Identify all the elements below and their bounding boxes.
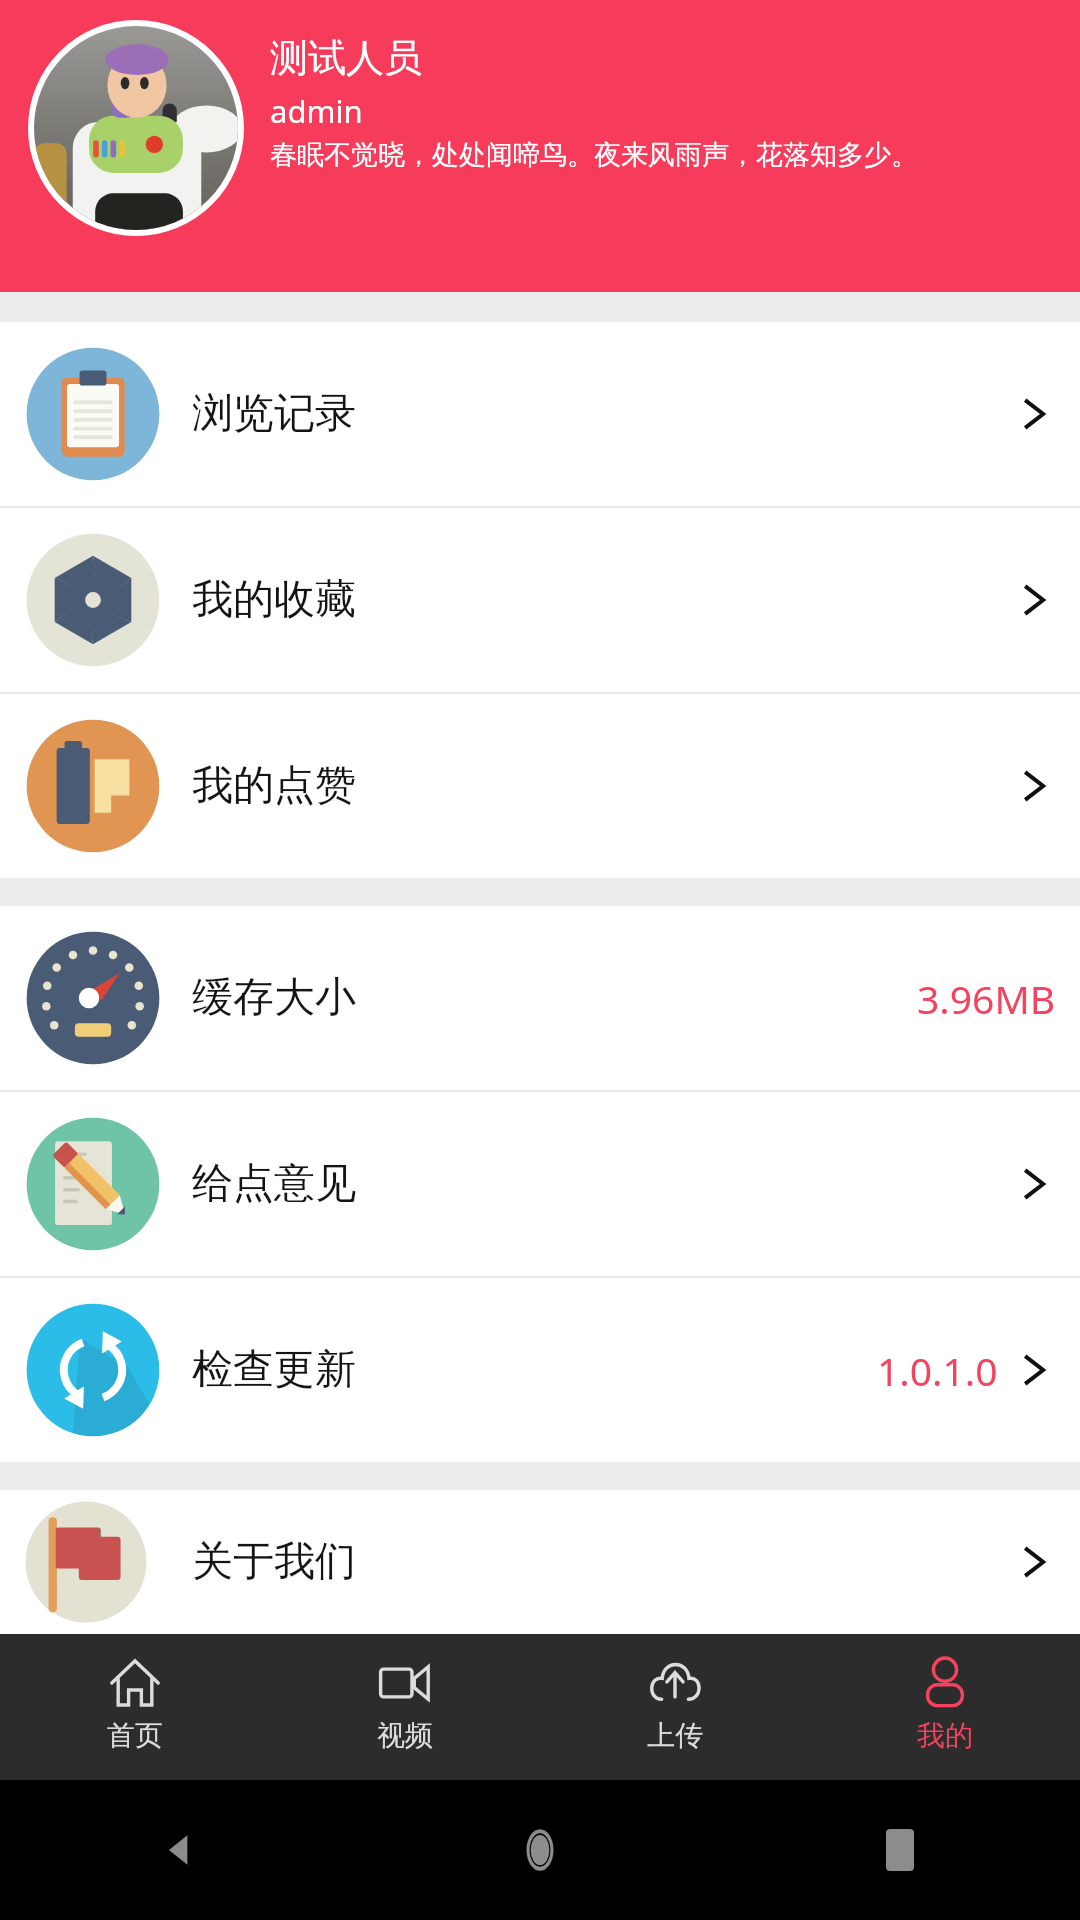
button[interactable]: 上传 [540, 1634, 810, 1780]
other: Home [514, 1824, 566, 1876]
button[interactable]: 检查更新 [0, 1278, 1080, 1462]
staticText: 浏览记录 [192, 388, 356, 440]
button[interactable]: 我的 [810, 1634, 1080, 1780]
staticText: 我的点赞 [192, 760, 356, 812]
staticText: 检查更新 [192, 1344, 356, 1396]
staticText: 视频 [377, 1718, 433, 1753]
staticText: 关于我们 [192, 1536, 356, 1588]
other: Profile photo [28, 20, 244, 236]
staticText: 3.96MB [917, 972, 1056, 1025]
button[interactable]: 我的点赞 [0, 694, 1080, 878]
button[interactable]: 视频 [270, 1634, 540, 1780]
staticText: 我的收藏 [192, 574, 356, 626]
staticText: 我的 [917, 1718, 973, 1753]
staticText: 缓存大小 [192, 972, 356, 1024]
button[interactable]: 关于我们 [0, 1490, 1080, 1634]
button[interactable]: 给点意见 [0, 1092, 1080, 1276]
staticText: 上传 [647, 1718, 703, 1753]
staticText: 首页 [107, 1718, 163, 1753]
button[interactable]: 我的收藏 [0, 508, 1080, 692]
button[interactable]: 浏览记录 [0, 322, 1080, 506]
other: Recent apps [886, 1829, 914, 1871]
staticText: 春眠不觉晓，处处闻啼鸟。夜来风雨声，花落知多少。 [270, 138, 918, 172]
staticText: 测试人员 [270, 34, 422, 82]
staticText: admin [270, 90, 363, 132]
button[interactable]: 首页 [0, 1634, 270, 1780]
other: Back [157, 1827, 203, 1873]
button[interactable]: 缓存大小 [0, 906, 1080, 1090]
staticText: 给点意见 [192, 1158, 356, 1210]
staticText: 1.0.1.0 [877, 1344, 998, 1397]
